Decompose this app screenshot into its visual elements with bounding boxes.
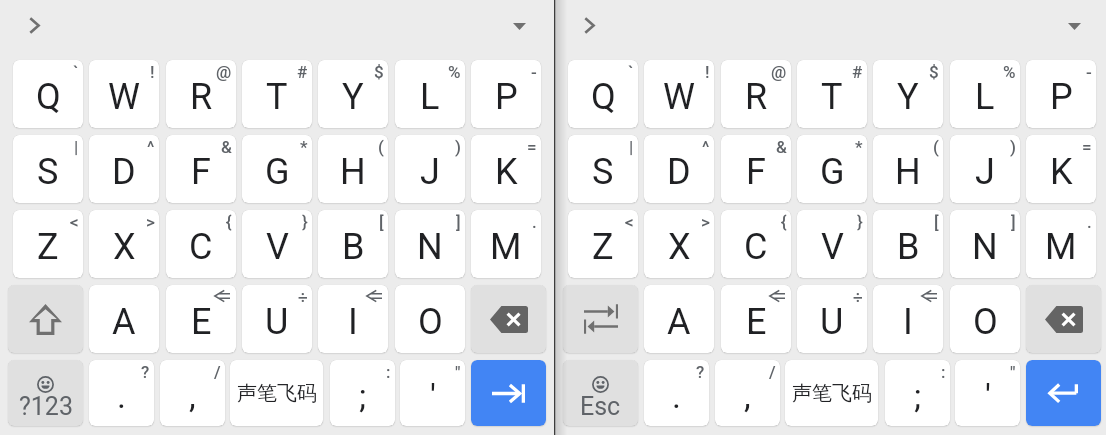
- button[interactable]: Y: [318, 60, 388, 128]
- button[interactable]: ;: [885, 360, 950, 426]
- staticText: ^: [702, 137, 710, 157]
- button[interactable]: Shift: [8, 285, 83, 353]
- staticText: K: [495, 151, 518, 193]
- staticText: T: [266, 76, 288, 118]
- staticText: [: [934, 212, 939, 232]
- button[interactable]: ': [400, 360, 465, 426]
- button[interactable]: F: [166, 135, 236, 203]
- button[interactable]: O: [395, 285, 465, 353]
- button[interactable]: Expand candidates: [571, 5, 611, 45]
- button[interactable]: C: [721, 210, 791, 278]
- button[interactable]: O: [950, 285, 1020, 353]
- button[interactable]: D: [89, 135, 159, 203]
- button[interactable]: L: [395, 60, 465, 128]
- button[interactable]: E: [166, 285, 236, 353]
- staticText: ]: [456, 212, 461, 232]
- button[interactable]: M: [1026, 210, 1096, 278]
- button[interactable]: G: [242, 135, 312, 203]
- button[interactable]: Hide keyboard: [1054, 6, 1094, 46]
- button[interactable]: Q: [568, 60, 638, 128]
- button[interactable]: ,: [160, 360, 225, 426]
- button[interactable]: R: [721, 60, 791, 128]
- button[interactable]: Tab: [563, 285, 638, 353]
- button[interactable]: N: [950, 210, 1020, 278]
- button[interactable]: L: [950, 60, 1020, 128]
- button[interactable]: S: [568, 135, 638, 203]
- button[interactable]: X: [644, 210, 714, 278]
- button[interactable]: Symbols: [8, 360, 83, 426]
- button[interactable]: U: [242, 285, 312, 353]
- button[interactable]: 声笔飞码: [230, 360, 323, 426]
- button[interactable]: B: [318, 210, 388, 278]
- button[interactable]: R: [166, 60, 236, 128]
- button[interactable]: J: [950, 135, 1020, 203]
- button[interactable]: Backspace: [1026, 285, 1101, 353]
- button[interactable]: P: [471, 60, 541, 128]
- button[interactable]: Z: [13, 210, 83, 278]
- button[interactable]: A: [89, 285, 159, 353]
- button[interactable]: ;: [330, 360, 395, 426]
- button[interactable]: K: [1026, 135, 1096, 203]
- staticText: ÷: [298, 287, 308, 307]
- staticText: #: [852, 62, 863, 82]
- staticText: X: [113, 226, 136, 268]
- staticText: V: [266, 226, 289, 268]
- button[interactable]: T: [797, 60, 867, 128]
- button[interactable]: Y: [873, 60, 943, 128]
- button[interactable]: Esc: [563, 360, 638, 426]
- staticText: >: [146, 212, 155, 232]
- button[interactable]: Expand candidates: [16, 5, 56, 45]
- staticText: .: [532, 212, 537, 232]
- button[interactable]: 声笔飞码: [785, 360, 878, 426]
- staticText: I: [348, 301, 358, 343]
- button[interactable]: W: [89, 60, 159, 128]
- button[interactable]: .: [89, 360, 154, 426]
- button[interactable]: X: [89, 210, 159, 278]
- button[interactable]: P: [1026, 60, 1096, 128]
- staticText: (: [933, 137, 939, 157]
- button[interactable]: C: [166, 210, 236, 278]
- button[interactable]: F: [721, 135, 791, 203]
- button[interactable]: V: [797, 210, 867, 278]
- button[interactable]: N: [395, 210, 465, 278]
- button[interactable]: T: [242, 60, 312, 128]
- button[interactable]: Enter: [1026, 360, 1101, 426]
- staticText: *: [300, 137, 308, 157]
- button[interactable]: I: [873, 285, 943, 353]
- button[interactable]: V: [242, 210, 312, 278]
- staticText: 声笔飞码: [237, 381, 317, 406]
- staticText: W: [108, 76, 140, 118]
- staticText: S: [592, 151, 614, 193]
- button[interactable]: ': [955, 360, 1020, 426]
- button[interactable]: E: [721, 285, 791, 353]
- staticText: ÷: [853, 287, 863, 307]
- button[interactable]: Tab: [471, 360, 546, 426]
- staticText: G: [820, 151, 845, 193]
- button[interactable]: D: [644, 135, 714, 203]
- button[interactable]: ,: [715, 360, 780, 426]
- staticText: S: [37, 151, 59, 193]
- button[interactable]: S: [13, 135, 83, 203]
- button[interactable]: H: [873, 135, 943, 203]
- button[interactable]: Hide keyboard: [499, 6, 539, 46]
- button[interactable]: Z: [568, 210, 638, 278]
- button[interactable]: .: [644, 360, 709, 426]
- staticText: $: [374, 62, 384, 82]
- button[interactable]: K: [471, 135, 541, 203]
- button[interactable]: I: [318, 285, 388, 353]
- button[interactable]: W: [644, 60, 714, 128]
- staticText: %: [448, 62, 461, 82]
- button[interactable]: B: [873, 210, 943, 278]
- button[interactable]: U: [797, 285, 867, 353]
- button[interactable]: A: [644, 285, 714, 353]
- button[interactable]: G: [797, 135, 867, 203]
- button[interactable]: J: [395, 135, 465, 203]
- button[interactable]: Q: [13, 60, 83, 128]
- staticText: .: [672, 376, 681, 416]
- button[interactable]: M: [471, 210, 541, 278]
- button[interactable]: H: [318, 135, 388, 203]
- staticText: <: [70, 212, 79, 232]
- button[interactable]: Backspace: [471, 285, 546, 353]
- staticText: ': [985, 376, 991, 416]
- staticText: Q: [591, 76, 616, 118]
